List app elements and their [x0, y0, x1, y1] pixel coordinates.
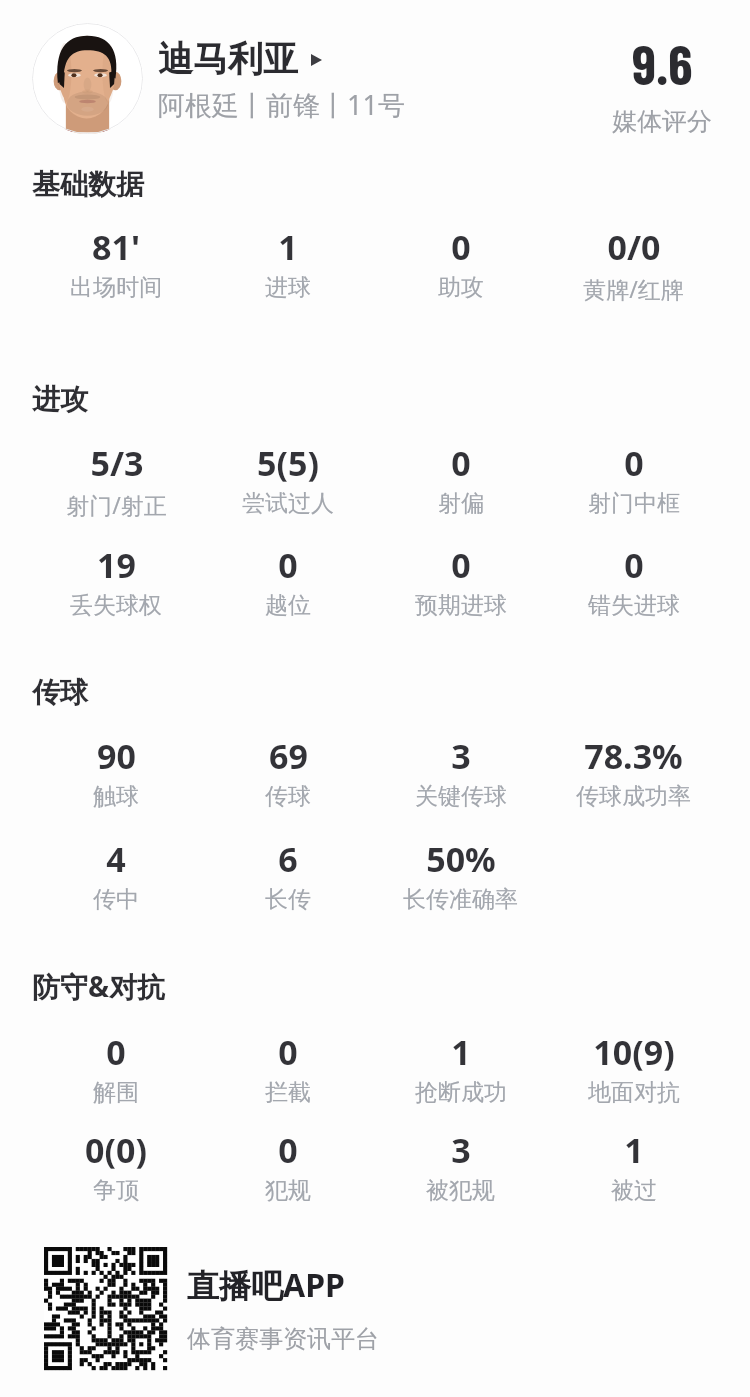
- staticText: 拦截: [265, 1078, 311, 1107]
- staticText: 错失进球: [588, 591, 680, 620]
- staticText: 传球成功率: [576, 782, 691, 811]
- staticText: 被犯规: [426, 1176, 495, 1205]
- staticText: 0: [278, 1127, 298, 1173]
- button[interactable]: 0: [265, 1127, 311, 1205]
- button[interactable]: 5/3: [66, 440, 167, 520]
- staticText: 长传: [265, 885, 311, 914]
- staticText: 90: [97, 733, 136, 779]
- button[interactable]: Player photo: [32, 23, 143, 134]
- staticText: 4: [106, 836, 126, 882]
- staticText: 丢失球权: [70, 591, 162, 620]
- staticText: 0(0): [85, 1127, 147, 1173]
- button[interactable]: 3: [426, 1127, 495, 1205]
- staticText: 9.6: [632, 30, 693, 96]
- button[interactable]: 0: [415, 542, 507, 620]
- staticText: 5(5): [257, 440, 319, 486]
- staticText: 0: [278, 1029, 298, 1075]
- staticText: 迪马利亚: [158, 37, 298, 81]
- button[interactable]: 0: [588, 542, 680, 620]
- staticText: 3: [451, 733, 471, 779]
- staticText: 长传准确率: [403, 885, 518, 914]
- staticText: 犯规: [265, 1176, 311, 1205]
- button[interactable]: 0: [588, 440, 680, 518]
- staticText: 越位: [265, 591, 311, 620]
- staticText: 射门/射正: [66, 489, 167, 520]
- button[interactable]: 1: [611, 1127, 657, 1205]
- staticText: 进攻: [32, 382, 88, 417]
- button[interactable]: 0: [265, 542, 311, 620]
- button[interactable]: 78.3%: [576, 733, 691, 811]
- staticText: 防守&对抗: [32, 967, 166, 1005]
- staticText: 射门中框: [588, 489, 680, 518]
- staticText: 关键传球: [415, 782, 507, 811]
- button[interactable]: 0: [438, 224, 484, 302]
- staticText: 体育赛事资讯平台: [187, 1324, 379, 1354]
- staticText: 0: [451, 440, 471, 486]
- button[interactable]: 0(0): [85, 1127, 147, 1205]
- button[interactable]: 4: [93, 836, 139, 914]
- staticText: 0: [106, 1029, 126, 1075]
- staticText: 传球: [265, 782, 311, 811]
- button[interactable]: 0/0: [583, 224, 684, 304]
- button[interactable]: QR code, download app: [44, 1247, 167, 1370]
- staticText: 50%: [426, 836, 496, 882]
- staticText: 69: [269, 733, 308, 779]
- staticText: 助攻: [438, 273, 484, 302]
- staticText: 媒体评分: [612, 106, 712, 137]
- staticText: 传球: [32, 675, 88, 710]
- staticText: 地面对抗: [588, 1078, 680, 1107]
- button[interactable]: 0: [265, 1029, 311, 1107]
- staticText: 0: [624, 440, 644, 486]
- button[interactable]: 1: [265, 224, 311, 302]
- staticText: 解围: [93, 1078, 139, 1107]
- staticText: 尝试过人: [242, 489, 334, 518]
- button[interactable]: 6: [265, 836, 311, 914]
- staticText: 78.3%: [584, 733, 683, 779]
- button[interactable]: 19: [70, 542, 162, 620]
- staticText: 直播吧APP: [187, 1263, 345, 1307]
- staticText: 射偏: [438, 489, 484, 518]
- button[interactable]: 0: [438, 440, 484, 518]
- staticText: 1: [451, 1029, 471, 1075]
- button[interactable]: 10(9): [588, 1029, 680, 1107]
- staticText: 0: [451, 542, 471, 588]
- button[interactable]: 81': [70, 224, 162, 302]
- button[interactable]: 迪马利亚: [158, 37, 322, 81]
- staticText: 81': [92, 224, 140, 270]
- staticText: 基础数据: [32, 167, 144, 202]
- staticText: 被过: [611, 1176, 657, 1205]
- staticText: 0: [278, 542, 298, 588]
- staticText: 1: [624, 1127, 644, 1173]
- staticText: 10(9): [593, 1029, 675, 1075]
- staticText: 3: [451, 1127, 471, 1173]
- staticText: 进球: [265, 273, 311, 302]
- other: Open player profile: [311, 54, 322, 66]
- button[interactable]: 直播吧APP: [187, 1263, 379, 1354]
- staticText: 黄牌/红牌: [583, 273, 684, 304]
- button[interactable]: 5(5): [242, 440, 334, 518]
- staticText: 19: [97, 542, 136, 588]
- staticText: 0: [451, 224, 471, 270]
- staticText: 1: [278, 224, 298, 270]
- staticText: 预期进球: [415, 591, 507, 620]
- staticText: 出场时间: [70, 273, 162, 302]
- button[interactable]: 90: [93, 733, 139, 811]
- staticText: 5/3: [90, 440, 144, 486]
- staticText: 阿根廷丨前锋丨11号: [158, 86, 405, 123]
- button[interactable]: 1: [415, 1029, 507, 1107]
- button[interactable]: 69: [265, 733, 311, 811]
- staticText: 传中: [93, 885, 139, 914]
- button[interactable]: 50%: [403, 836, 518, 914]
- staticText: 争顶: [93, 1176, 139, 1205]
- staticText: 6: [278, 836, 298, 882]
- staticText: 抢断成功: [415, 1078, 507, 1107]
- button[interactable]: 3: [415, 733, 507, 811]
- staticText: 0: [624, 542, 644, 588]
- staticText: 0/0: [607, 224, 661, 270]
- button[interactable]: 0: [93, 1029, 139, 1107]
- staticText: 触球: [93, 782, 139, 811]
